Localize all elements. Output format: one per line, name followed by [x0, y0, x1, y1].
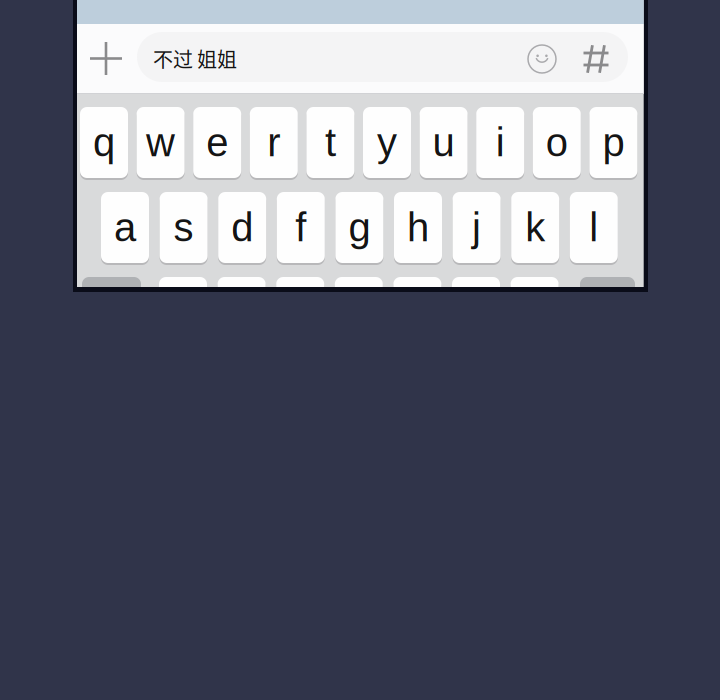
- staticText: e: [206, 120, 228, 165]
- button[interactable]: w: [137, 105, 185, 180]
- button[interactable]: j: [453, 190, 501, 265]
- button[interactable]: z: [159, 275, 207, 350]
- button[interactable]: t: [306, 105, 354, 180]
- button[interactable]: b: [393, 275, 441, 350]
- button[interactable]: e: [193, 105, 241, 180]
- staticText: n: [465, 290, 487, 335]
- staticText: s: [174, 205, 194, 250]
- staticText: q: [93, 120, 115, 165]
- button[interactable]: n: [452, 275, 500, 350]
- button[interactable]: m: [511, 275, 559, 350]
- button[interactable]: a: [101, 190, 149, 265]
- staticText: a: [114, 205, 136, 250]
- staticText: w: [146, 120, 175, 165]
- button[interactable]: u: [420, 105, 468, 180]
- staticText: h: [407, 205, 429, 250]
- staticText: i: [496, 120, 505, 165]
- staticText: v: [349, 290, 369, 335]
- button[interactable]: d: [218, 190, 266, 265]
- button[interactable]: h: [394, 190, 442, 265]
- button[interactable]: Emoji: [520, 34, 564, 84]
- button[interactable]: i: [476, 105, 524, 180]
- button[interactable]: l: [570, 190, 618, 265]
- staticText: p: [602, 120, 624, 165]
- button[interactable]: q: [80, 105, 128, 180]
- staticText: j: [472, 205, 481, 250]
- button[interactable]: o: [533, 105, 581, 180]
- staticText: y: [377, 120, 397, 165]
- staticText: t: [325, 120, 336, 165]
- staticText: g: [348, 205, 370, 250]
- staticText: m: [518, 290, 551, 335]
- staticText: z: [173, 290, 193, 335]
- button[interactable]: s: [160, 190, 208, 265]
- button[interactable]: k: [511, 190, 559, 265]
- staticText: r: [267, 120, 280, 165]
- button[interactable]: Key: [82, 275, 141, 350]
- button[interactable]: r: [250, 105, 298, 180]
- staticText: d: [231, 205, 253, 250]
- staticText: l: [589, 205, 598, 250]
- staticText: c: [290, 290, 310, 335]
- staticText: b: [406, 290, 428, 335]
- button[interactable]: f: [277, 190, 325, 265]
- staticText: u: [433, 120, 455, 165]
- staticText: f: [295, 205, 306, 250]
- staticText: o: [546, 120, 568, 165]
- staticText: x: [232, 290, 252, 335]
- button[interactable]: c: [276, 275, 324, 350]
- button[interactable]: Hashtag: [574, 34, 618, 84]
- staticText: 不过 姐姐: [153, 44, 237, 73]
- button[interactable]: x: [218, 275, 266, 350]
- button[interactable]: v: [335, 275, 383, 350]
- button[interactable]: Add: [79, 27, 133, 89]
- button[interactable]: p: [589, 105, 637, 180]
- button[interactable]: g: [335, 190, 383, 265]
- staticText: k: [525, 205, 545, 250]
- button[interactable]: y: [363, 105, 411, 180]
- button[interactable]: Key: [580, 275, 635, 350]
